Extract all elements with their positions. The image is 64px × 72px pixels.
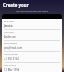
staticText: Phone number: [4, 53, 19, 56]
staticText: Last name: [4, 31, 14, 34]
staticText: Let's get started with the basics: [0, 10, 64, 13]
staticText: Email address: [4, 42, 18, 45]
staticText: +1 555 0134: [4, 57, 19, 61]
button[interactable]: Date of birth: [3, 64, 61, 71]
staticText: Date of birth: [4, 64, 16, 67]
staticText: First name: [4, 20, 14, 23]
button[interactable]: Phone number: [3, 53, 61, 63]
button[interactable]: Email address: [3, 42, 61, 52]
staticText: jess@mail.com: [4, 46, 23, 50]
staticText: Anderson: [4, 35, 16, 39]
staticText: 12 Mar 1994: [4, 68, 20, 71]
staticText: Create your: [3, 2, 29, 8]
staticText: Jessica: [4, 24, 13, 28]
button[interactable]: First name: [3, 20, 61, 30]
button[interactable]: Last name: [3, 31, 61, 41]
